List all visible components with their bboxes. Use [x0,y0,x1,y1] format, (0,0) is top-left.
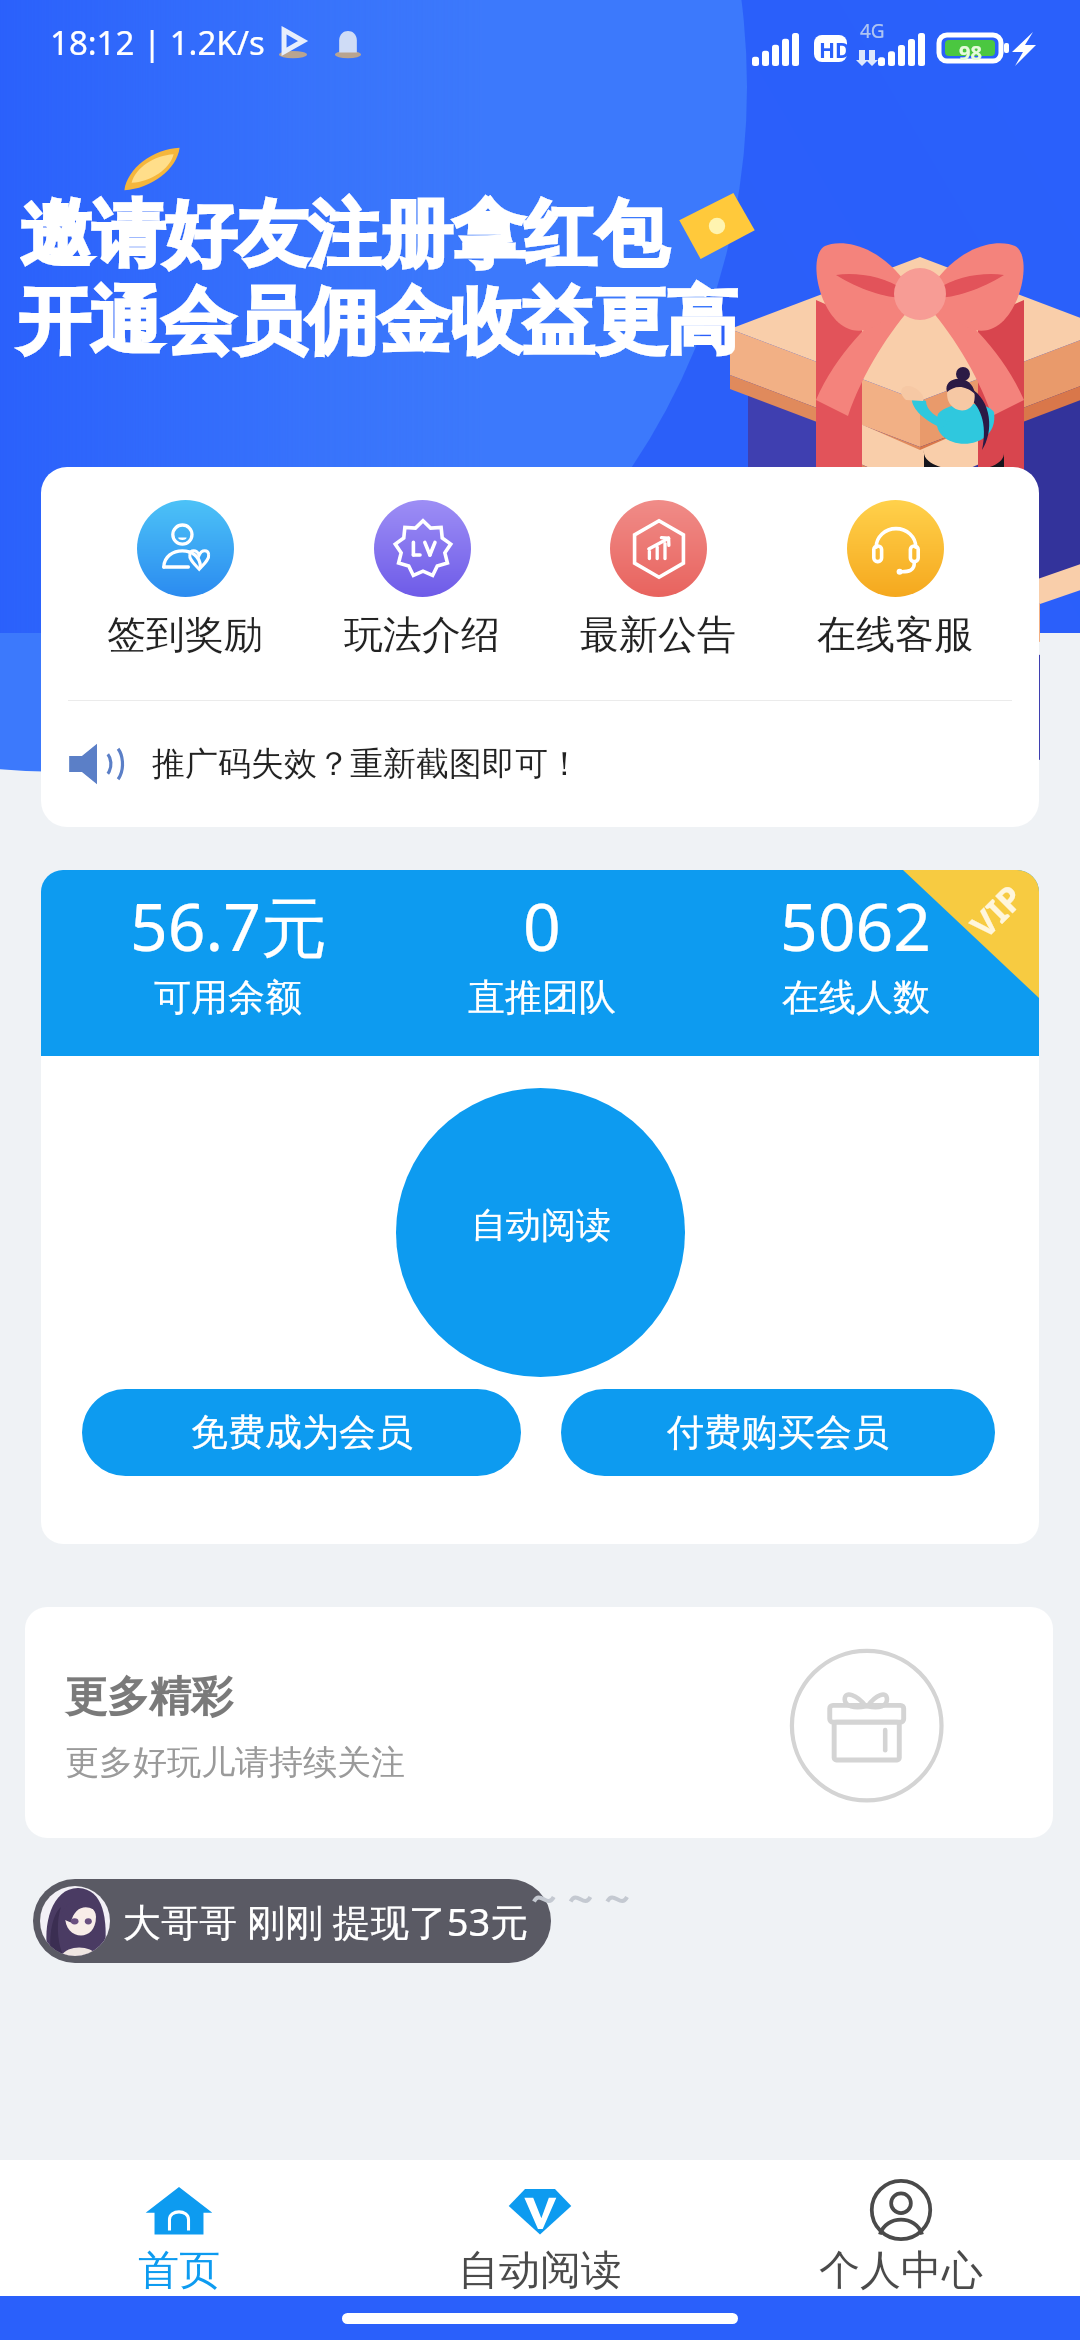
button[interactable]: 0 [385,870,699,1021]
staticText: 个人中心 [819,2245,983,2296]
staticText: 0 [523,880,561,970]
button[interactable]: VIP [903,870,1039,998]
button[interactable]: 免费成为会员 [82,1389,521,1476]
staticText: 大哥哥 刚刚 提现了53元 [123,1895,529,1947]
staticText: 邀请好友注册拿红包 [20,190,668,281]
button[interactable]: 个人中心 [741,2160,1061,2296]
staticText: 推广码失效？重新截图即可！ [152,743,581,785]
button[interactable]: 在线客服 [778,500,1012,659]
staticText: 更多精彩 [65,1671,233,1724]
staticText: 可用余额 [154,974,302,1021]
other: Media [279,23,307,63]
staticText: 98 [959,39,982,66]
button[interactable]: 大哥哥 刚刚 提现了53元 [33,1879,551,1963]
staticText: 18:12 | 1.2K/s [50,20,265,65]
button[interactable]: 玩法介绍 [305,500,539,659]
staticText: 5062 [780,880,932,970]
staticText: 最新公告 [580,610,736,659]
staticText: 玩法介绍 [344,610,500,659]
button[interactable]: 自动阅读 [396,1088,685,1377]
staticText: 签到奖励 [107,610,263,659]
button[interactable]: 5062 [699,870,1013,1021]
other: Notification [335,23,361,63]
button[interactable]: 自动阅读 [380,2160,700,2296]
button[interactable]: 最新公告 [541,500,775,659]
staticText: 在线客服 [817,610,973,659]
staticText: 更多好玩儿请持续关注 [65,1741,405,1784]
button[interactable]: 56.7元 [71,870,385,1021]
staticText: 56.7元 [130,880,327,970]
button[interactable]: 推广码失效？重新截图即可！ [41,701,1039,827]
staticText: 开通会员佣金收益更高 [18,277,738,368]
staticText: 免费成为会员 [191,1409,413,1456]
staticText: HD [819,36,851,65]
button[interactable]: 签到奖励 [68,500,302,659]
staticText: VIP [960,875,1033,947]
staticText: 在线人数 [782,974,930,1021]
button[interactable]: 更多精彩 [25,1607,1053,1838]
staticText: 自动阅读 [471,1203,611,1247]
staticText: 4G [860,18,885,44]
button[interactable]: 首页 [19,2160,339,2296]
staticText: 直推团队 [468,974,616,1021]
staticText: 首页 [138,2245,220,2296]
button[interactable]: 付费购买会员 [561,1389,995,1476]
staticText: 付费购买会员 [667,1409,889,1456]
staticText: 自动阅读 [458,2245,622,2296]
